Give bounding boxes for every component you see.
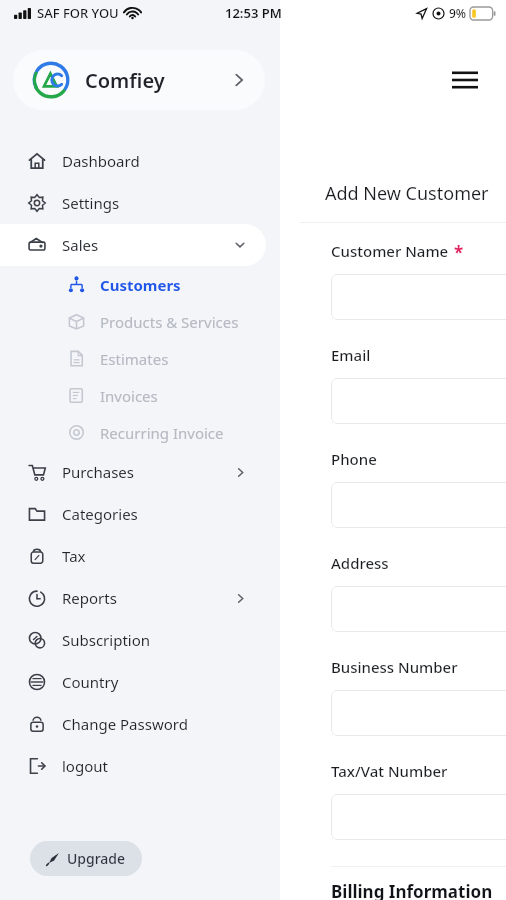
staticText: Tax bbox=[62, 546, 86, 566]
button[interactable]: Reports bbox=[0, 577, 280, 619]
button[interactable]: Settings bbox=[0, 182, 280, 224]
staticText: Recurring Invoice bbox=[100, 423, 224, 443]
button[interactable]: Customers bbox=[0, 266, 280, 303]
staticText: Phone bbox=[331, 449, 377, 469]
button[interactable]: Tax bbox=[0, 535, 280, 577]
button[interactable]: Dashboard bbox=[0, 140, 280, 182]
staticText: Billing Information bbox=[331, 880, 493, 900]
button[interactable]: Change Password bbox=[0, 703, 280, 745]
staticText: logout bbox=[62, 756, 108, 776]
button[interactable]: Subscription bbox=[0, 619, 280, 661]
staticText: Dashboard bbox=[62, 151, 140, 171]
button[interactable]: Categories bbox=[0, 493, 280, 535]
staticText: 9% bbox=[449, 5, 467, 21]
button[interactable]: logout bbox=[0, 745, 280, 787]
staticText: Tax/Vat Number bbox=[331, 761, 448, 781]
staticText: Settings bbox=[62, 193, 120, 213]
staticText: Categories bbox=[62, 504, 138, 524]
staticText: Customers bbox=[100, 275, 181, 295]
staticText: Purchases bbox=[62, 462, 134, 482]
staticText: SAF FOR YOU bbox=[37, 4, 119, 22]
button[interactable]: Country bbox=[0, 661, 280, 703]
staticText: * bbox=[454, 241, 464, 264]
staticText: 12:53 PM bbox=[225, 4, 282, 22]
staticText: Upgrade bbox=[67, 849, 126, 868]
staticText: Reports bbox=[62, 588, 117, 608]
button[interactable]: Upgrade bbox=[30, 841, 142, 876]
staticText: Add New Customer bbox=[325, 181, 489, 206]
button[interactable]: Products & Services bbox=[0, 303, 280, 340]
button[interactable]: Recurring Invoice bbox=[0, 414, 280, 451]
button[interactable]: Purchases bbox=[0, 451, 280, 493]
staticText: Products & Services bbox=[100, 312, 239, 332]
staticText: Business Number bbox=[331, 657, 458, 677]
button[interactable] bbox=[331, 586, 506, 632]
button[interactable] bbox=[331, 794, 506, 840]
button[interactable] bbox=[331, 274, 506, 320]
button[interactable] bbox=[331, 690, 506, 736]
staticText: Comfiey bbox=[85, 67, 165, 94]
staticText: Country bbox=[62, 672, 119, 692]
button[interactable]: Estimates bbox=[0, 340, 280, 377]
button[interactable]: Invoices bbox=[0, 377, 280, 414]
staticText: Address bbox=[331, 553, 389, 573]
staticText: Sales bbox=[62, 235, 99, 255]
button[interactable]: Sales bbox=[0, 224, 266, 266]
staticText: Invoices bbox=[100, 386, 158, 406]
staticText: Email bbox=[331, 345, 371, 365]
staticText: Subscription bbox=[62, 630, 151, 650]
button[interactable]: Comfiey bbox=[13, 50, 265, 110]
button[interactable]: Menu bbox=[447, 62, 483, 98]
staticText: Estimates bbox=[100, 349, 169, 369]
staticText: Change Password bbox=[62, 714, 188, 734]
button[interactable] bbox=[331, 482, 506, 528]
staticText: Customer Name bbox=[331, 241, 449, 261]
button[interactable] bbox=[331, 378, 506, 424]
